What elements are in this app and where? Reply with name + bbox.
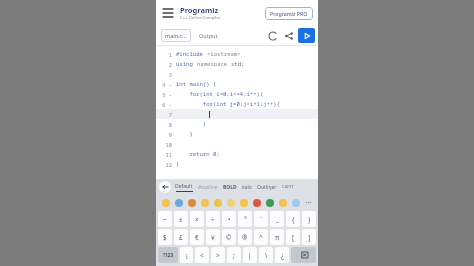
staticText: ?123: [163, 252, 174, 258]
button[interactable]: Dark mode: [266, 29, 280, 43]
button[interactable]: ?123: [158, 247, 178, 263]
staticText: CAPIT: [282, 184, 294, 190]
button[interactable]: ÷: [206, 211, 220, 227]
staticText: ±: [179, 215, 183, 224]
button[interactable]: ¥: [206, 229, 220, 245]
staticText: |: [248, 251, 252, 260]
staticText: ~: [163, 215, 167, 224]
button[interactable]: Emoji: [265, 198, 274, 207]
button[interactable]: ×: [190, 211, 204, 227]
staticText: ¥: [211, 233, 215, 242]
staticText: ^: [259, 233, 263, 242]
button[interactable]: €: [190, 229, 204, 245]
button[interactable]: π: [270, 229, 284, 245]
staticText: ÷: [211, 215, 215, 224]
staticText: π: [275, 233, 280, 242]
button[interactable]: Emoji: [278, 198, 287, 207]
staticText: 6 -: [162, 101, 172, 108]
staticText: >: [216, 251, 220, 260]
staticText: £: [179, 233, 183, 242]
button[interactable]: ¡: [180, 247, 193, 263]
button[interactable]: $: [158, 229, 172, 245]
button[interactable]: Emoji: [291, 198, 300, 207]
button[interactable]: _: [270, 211, 284, 227]
staticText: BOLD: [223, 184, 237, 191]
button[interactable]: Emoji: [161, 198, 170, 207]
staticText: C++ Online Compiler: [180, 15, 221, 21]
button[interactable]: Programiz PRO: [265, 7, 313, 20]
staticText: Default: [175, 183, 193, 190]
button[interactable]: Emoji: [252, 198, 261, 207]
button[interactable]: Emoji: [174, 198, 183, 207]
staticText: }: [308, 215, 311, 224]
staticText: ×: [195, 215, 199, 224]
staticText: #include: [176, 50, 207, 58]
staticText: ©: [226, 233, 232, 242]
staticText: ¡: [186, 251, 188, 260]
staticText: ¿: [281, 251, 284, 260]
staticText: Output: [199, 32, 218, 39]
staticText: €: [195, 233, 199, 242]
staticText: ®: [242, 233, 248, 242]
button[interactable]: ¿: [275, 247, 289, 263]
staticText: #outline: [198, 184, 218, 191]
staticText: `: [260, 215, 262, 224]
button[interactable]: Run: [298, 28, 315, 43]
button[interactable]: Share: [282, 29, 296, 43]
button[interactable]: ©: [222, 229, 236, 245]
button[interactable]: Emoji: [239, 198, 248, 207]
button[interactable]: <: [195, 247, 209, 263]
staticText: 8: [168, 121, 172, 128]
button[interactable]: \: [259, 247, 273, 263]
button[interactable]: •: [222, 211, 236, 227]
staticText: 5 -: [162, 91, 172, 98]
staticText: <iostream>: [207, 50, 241, 58]
staticText: }: [176, 120, 207, 128]
staticText: namespace: [197, 60, 231, 68]
button[interactable]: |: [243, 247, 257, 263]
button[interactable]: `: [254, 211, 268, 227]
staticText: 10: [165, 141, 172, 148]
button[interactable]: Outliŋer: [257, 184, 277, 191]
staticText: std;: [231, 60, 245, 68]
button[interactable]: Emoji: [213, 198, 222, 207]
staticText: 7: [168, 111, 172, 118]
button[interactable]: >: [211, 247, 225, 263]
staticText: 1: [168, 51, 172, 58]
staticText: 2: [168, 61, 172, 68]
staticText: •: [228, 215, 231, 224]
staticText: Programiz: [180, 5, 219, 15]
staticText: 9: [168, 131, 172, 138]
button[interactable]: Emoji: [200, 198, 209, 207]
button[interactable]: Back: [159, 181, 171, 193]
button[interactable]: italic: [242, 184, 252, 190]
button[interactable]: £: [174, 229, 188, 245]
button[interactable]: Backspace: [291, 247, 316, 263]
button[interactable]: ~: [158, 211, 172, 227]
button[interactable]: }: [302, 211, 316, 227]
button[interactable]: BOLD: [223, 184, 237, 191]
button[interactable]: [: [286, 229, 300, 245]
button[interactable]: ]: [302, 229, 316, 245]
button[interactable]: Emoji: [187, 198, 196, 207]
staticText: $: [163, 233, 167, 242]
button[interactable]: Output: [196, 29, 221, 42]
staticText: for(int j=0;j<i+1;j++){: [176, 100, 281, 108]
button[interactable]: ±: [174, 211, 188, 227]
staticText: 3: [168, 71, 172, 78]
button[interactable]: {: [286, 211, 300, 227]
button[interactable]: Menu: [161, 6, 175, 20]
button[interactable]: °: [238, 211, 252, 227]
button[interactable]: main.c...: [161, 29, 191, 42]
button[interactable]: ;: [227, 247, 241, 263]
button[interactable]: ^: [254, 229, 268, 245]
button[interactable]: More emoji: [304, 198, 313, 207]
button[interactable]: Default: [175, 183, 193, 192]
button[interactable]: ®: [238, 229, 252, 245]
staticText: {: [292, 215, 295, 224]
button[interactable]: Emoji: [226, 198, 235, 207]
button[interactable]: #outline: [198, 184, 218, 191]
staticText: \: [265, 251, 268, 260]
staticText: ]: [308, 233, 311, 242]
staticText: °: [244, 215, 247, 224]
